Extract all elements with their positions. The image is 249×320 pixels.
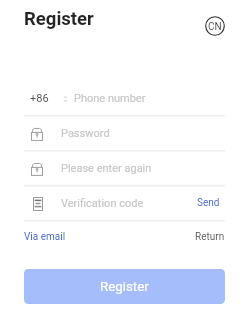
button[interactable]: Verification code field [24,186,225,221]
staticText: Phone number [74,92,146,105]
staticText: Please enter again [61,162,152,175]
staticText: Via email [24,231,66,243]
staticText: Return [195,231,225,243]
staticText: Verification code [61,197,144,210]
button[interactable]: Password field [24,116,225,151]
button[interactable]: Select country code CN [205,16,225,36]
button[interactable]: Confirm password field [24,151,225,186]
staticText: +86 [30,92,49,105]
button[interactable]: Via email [24,227,74,247]
button[interactable]: Phone number field [24,81,225,116]
staticText: CN [208,21,222,33]
button[interactable]: Return [187,227,225,247]
button[interactable]: Send [189,192,225,214]
button[interactable]: Register [24,269,225,304]
staticText: Password [61,127,110,140]
staticText: Register [24,8,94,30]
staticText: Send [197,197,220,209]
staticText: Register [100,279,149,295]
